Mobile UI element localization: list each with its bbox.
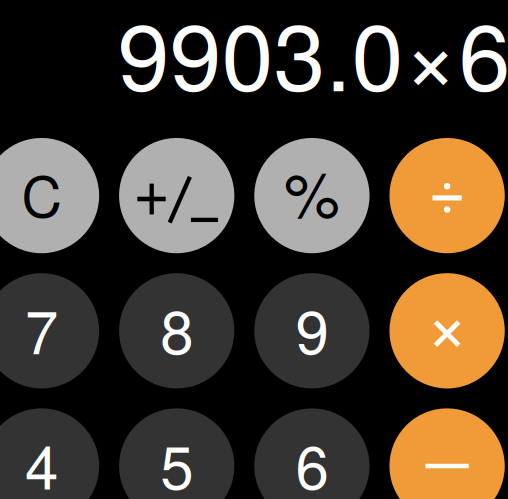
staticText: 7	[25, 285, 58, 371]
staticText: 9903.0×6	[117, 0, 508, 118]
button[interactable]: Subtract	[389, 408, 505, 499]
button[interactable]: 7	[0, 273, 99, 388]
staticText: 4	[25, 420, 58, 499]
button[interactable]: Plus Minus	[119, 138, 234, 253]
button[interactable]: 4	[0, 408, 99, 499]
button[interactable]: %	[254, 138, 369, 253]
staticText: 8	[160, 285, 193, 371]
button[interactable]: 6	[254, 408, 369, 499]
staticText: 9	[295, 285, 328, 371]
staticText: C	[21, 153, 61, 233]
button[interactable]: Multiply	[389, 273, 505, 388]
button[interactable]: Divide	[389, 138, 505, 253]
staticText: 6	[295, 420, 328, 499]
button[interactable]: C	[0, 138, 99, 253]
staticText: 5	[160, 420, 193, 499]
staticText: %	[284, 146, 340, 235]
button[interactable]: 8	[119, 273, 234, 388]
button[interactable]: 5	[119, 408, 234, 499]
button[interactable]: 9	[254, 273, 369, 388]
